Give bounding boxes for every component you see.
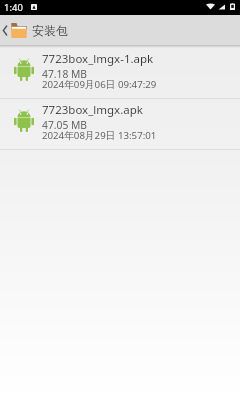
staticText: 47.18 MB bbox=[42, 67, 88, 81]
button[interactable]: 安装包 bbox=[0, 15, 68, 45]
staticText: 2024年08月29日 13:57:01 bbox=[42, 129, 157, 142]
staticText: 安装包 bbox=[32, 23, 68, 38]
staticText: 7723box_lmgx.apk bbox=[42, 102, 143, 118]
staticText: 47.05 MB bbox=[42, 118, 88, 132]
button[interactable]: 7723box_lmgx-1.apk bbox=[0, 48, 240, 98]
button[interactable]: 7723box_lmgx.apk bbox=[0, 99, 240, 149]
staticText: 1:40 bbox=[4, 1, 23, 14]
staticText: 2024年09月06日 09:47:29 bbox=[42, 78, 157, 91]
staticText: 7723box_lmgx-1.apk bbox=[42, 51, 154, 67]
